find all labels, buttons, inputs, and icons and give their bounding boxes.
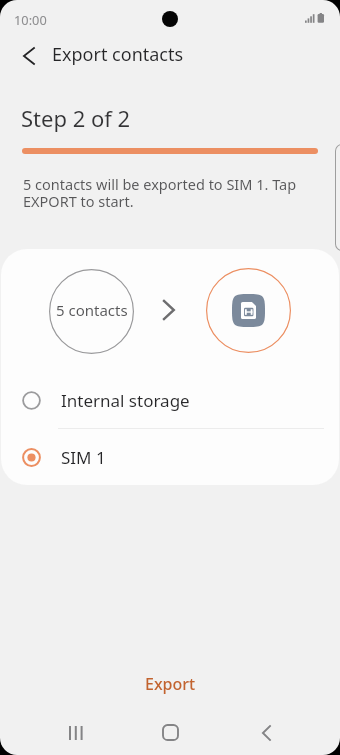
staticText: Export <box>145 673 196 695</box>
button[interactable]: Back <box>6 38 50 74</box>
staticText: SIM 1 <box>61 446 106 469</box>
staticText: 10:00 <box>14 11 47 28</box>
button[interactable]: Export <box>0 664 340 704</box>
button[interactable]: SIM 1 <box>1 429 339 485</box>
staticText: Export contacts <box>52 42 184 67</box>
button[interactable]: Internal storage <box>1 372 339 429</box>
staticText: Step 2 of 2 <box>21 103 131 133</box>
button[interactable]: Back <box>242 710 289 755</box>
staticText: 5 contacts <box>56 300 128 320</box>
staticText: Internal storage <box>61 389 190 412</box>
button[interactable]: Home <box>147 710 194 755</box>
button[interactable]: Recent apps <box>52 710 99 755</box>
staticText: 5 contacts will be exported to SIM 1. Ta… <box>23 174 297 211</box>
